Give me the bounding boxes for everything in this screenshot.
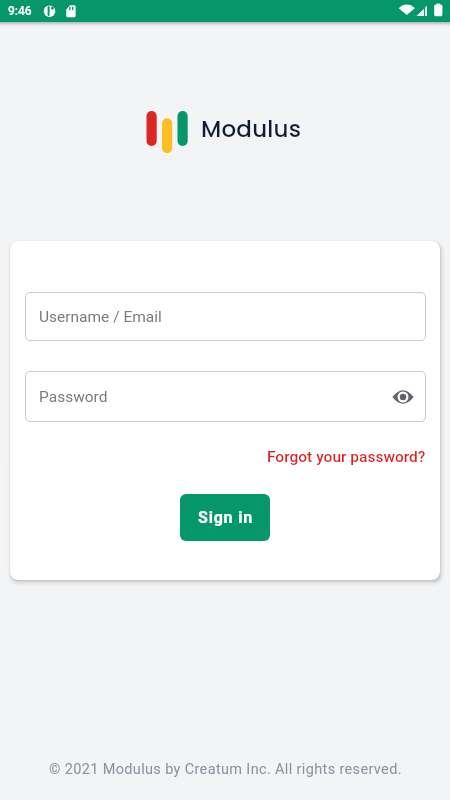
button[interactable]: Forgot your password? (267, 448, 426, 466)
staticText: © 2021 Modulus by Creatum Inc. All right… (49, 761, 402, 778)
button[interactable]: Username / Email (25, 292, 426, 341)
staticText: Modulus (201, 113, 302, 145)
button[interactable] (392, 389, 414, 405)
staticText: Forgot your password? (267, 448, 426, 466)
staticText: Password (39, 388, 108, 406)
button[interactable]: Sign in (180, 494, 270, 541)
button[interactable]: Password (25, 371, 426, 422)
staticText: 9:46 (8, 4, 32, 18)
staticText: Sign in (198, 508, 253, 527)
staticText: Username / Email (39, 308, 162, 326)
